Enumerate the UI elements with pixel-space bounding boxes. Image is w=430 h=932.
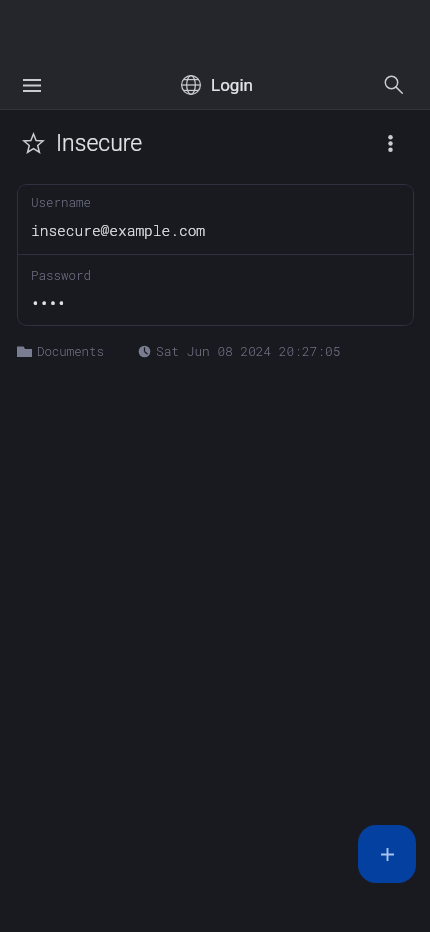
staticText: Documents — [37, 343, 104, 359]
button[interactable]: Login — [181, 61, 253, 109]
button[interactable]: Search — [370, 61, 418, 109]
staticText: •••• — [31, 294, 66, 312]
staticText: Insecure — [56, 130, 143, 157]
button[interactable]: More options — [368, 119, 412, 167]
button[interactable]: Insecure — [0, 114, 430, 172]
button[interactable]: Menu — [7, 61, 57, 109]
button[interactable]: Add — [358, 825, 416, 883]
staticText: Password — [31, 267, 92, 283]
staticText: Sat Jun 08 2024 20:27:05 — [156, 343, 341, 360]
staticText: insecure@example.com — [31, 221, 206, 240]
staticText: Username — [31, 194, 92, 210]
staticText: Login — [211, 75, 253, 95]
